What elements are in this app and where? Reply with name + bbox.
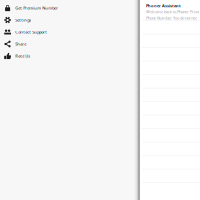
button[interactable]: Rate Us <box>0 50 133 62</box>
staticText: Welcome back to Phoner Priva <box>146 9 199 14</box>
button[interactable]: Settings <box>0 14 133 26</box>
button[interactable]: Get Premium Number <box>0 2 133 14</box>
staticText: Phone Number. You do not nee <box>146 15 197 20</box>
staticText: Get Premium Number <box>15 5 58 11</box>
button[interactable]: Share <box>0 38 133 50</box>
staticText: Share <box>15 41 26 47</box>
staticText: Contact Support <box>15 29 47 35</box>
staticText: Rate Us <box>15 53 30 59</box>
staticText: Settings <box>15 17 31 23</box>
staticText: Phoner Assistant <box>146 3 181 8</box>
button[interactable]: Contact Support <box>0 26 133 38</box>
